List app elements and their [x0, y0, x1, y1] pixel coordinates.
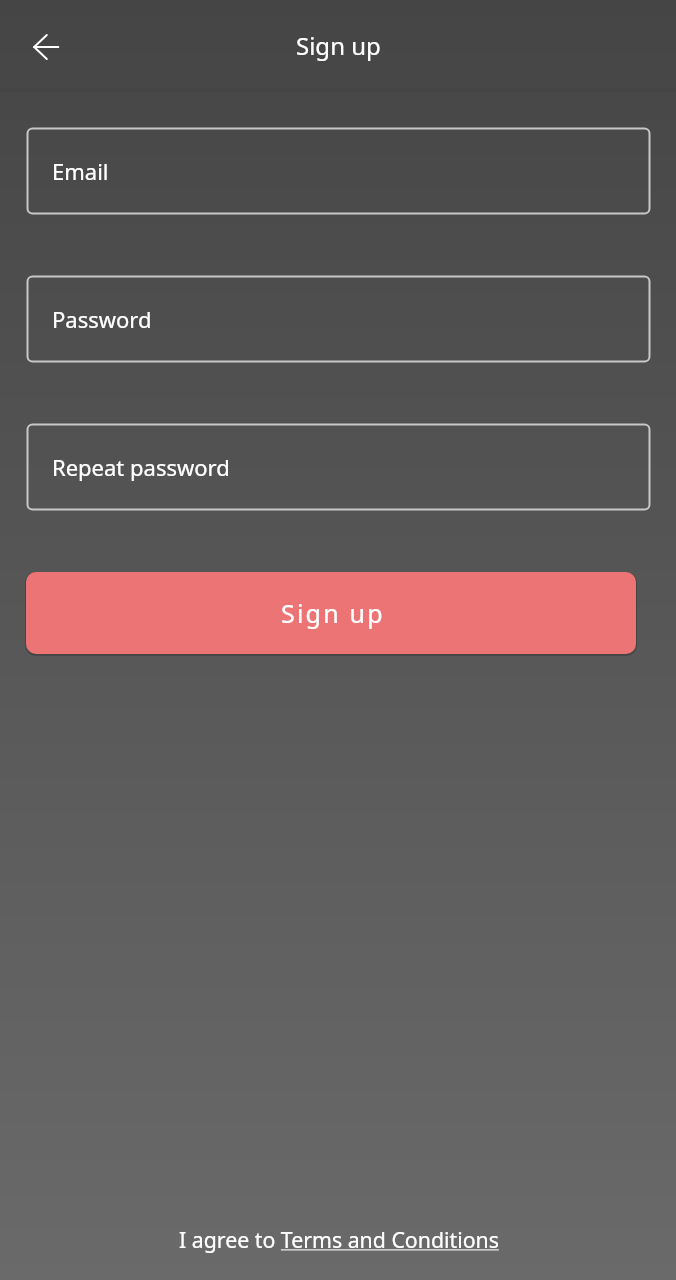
button[interactable]: Password	[27, 276, 650, 362]
button[interactable]: Back	[11, 12, 81, 82]
staticText: Sign up	[296, 29, 381, 62]
staticText: Sign up	[281, 596, 385, 630]
button[interactable]: Sign up	[26, 572, 636, 654]
button[interactable]: Email	[27, 128, 650, 214]
staticText: Repeat password	[52, 452, 230, 482]
button[interactable]: I agree to Terms and Conditions	[179, 1225, 499, 1254]
staticText: Email	[52, 156, 109, 186]
staticText: I agree to Terms and Conditions	[179, 1225, 499, 1254]
staticText: Password	[52, 304, 152, 334]
button[interactable]: Repeat password	[27, 424, 650, 510]
